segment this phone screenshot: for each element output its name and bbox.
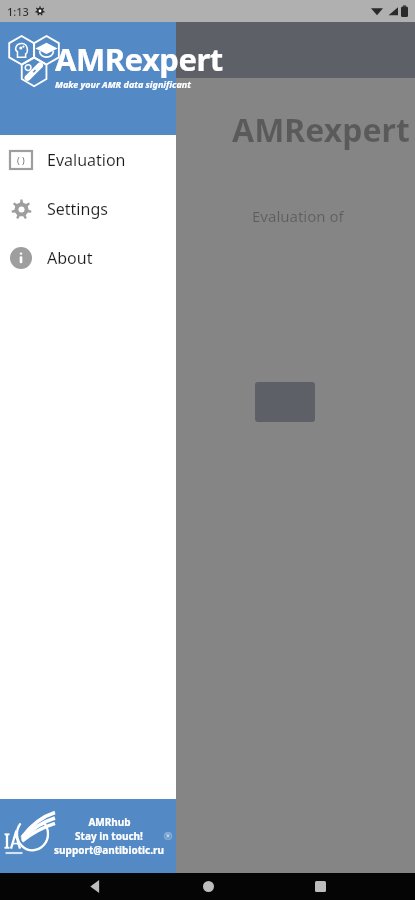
button[interactable]: Back bbox=[77, 873, 113, 900]
button[interactable]: Recents bbox=[302, 873, 338, 900]
staticText: Evaluation bbox=[47, 149, 126, 171]
staticText: AMRexpert bbox=[55, 38, 223, 80]
staticText: Evaluation of bbox=[252, 206, 344, 226]
other: Evaluation bbox=[10, 151, 32, 169]
staticText: Stay in touch! bbox=[75, 829, 143, 843]
button[interactable]: AMRhub bbox=[0, 799, 176, 873]
staticText: Make your AMR data significant bbox=[55, 78, 191, 90]
button[interactable]: About bbox=[0, 243, 176, 272]
button[interactable]: Home bbox=[190, 873, 226, 900]
staticText: Settings bbox=[47, 198, 108, 220]
other: Settings bbox=[11, 199, 32, 220]
button[interactable]: Settings bbox=[0, 194, 176, 223]
staticText: AMRexpert bbox=[232, 108, 410, 152]
staticText: About bbox=[47, 247, 93, 269]
other: About bbox=[10, 247, 32, 269]
staticText: 1:13 bbox=[7, 4, 29, 19]
staticText: support@antibiotic.ru bbox=[54, 843, 164, 857]
button[interactable]: Evaluation bbox=[0, 145, 176, 174]
staticText: AMRhub bbox=[88, 815, 131, 829]
staticText: ( ) bbox=[17, 154, 25, 166]
